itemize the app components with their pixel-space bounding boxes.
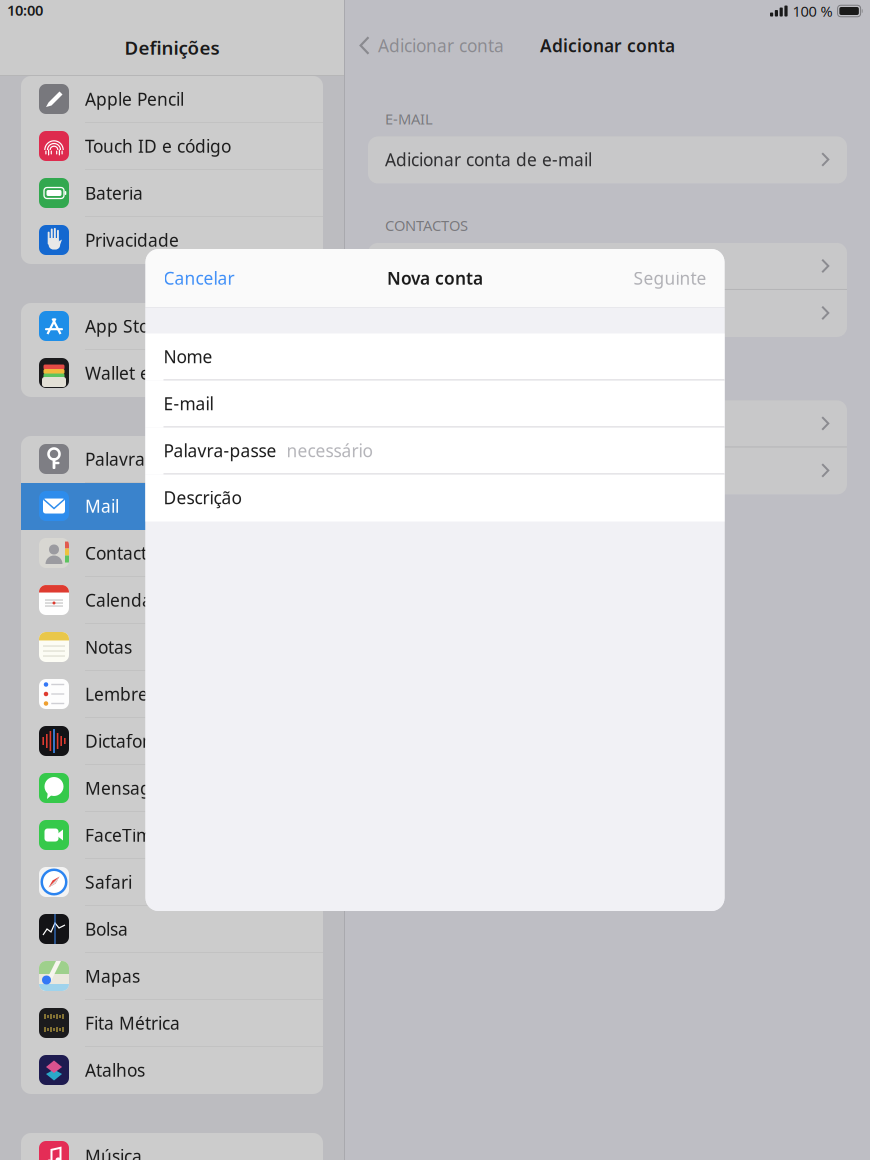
staticText: Música [85, 1144, 142, 1160]
staticText: Mail [85, 494, 119, 517]
button[interactable]: Palavras-passe [21, 436, 323, 483]
staticText: Mensagens [85, 776, 180, 799]
staticText: Adicionar conta [540, 34, 675, 57]
button[interactable]: Nome [145, 333, 724, 380]
staticText: necessário [286, 439, 372, 462]
staticText: Atalhos [85, 1058, 145, 1081]
staticText: Fita Métrica [85, 1011, 180, 1034]
staticText: Contactos [85, 541, 165, 564]
staticText: Descrição [163, 486, 241, 509]
staticText: CONTACTOS [385, 215, 468, 235]
button[interactable]: Notas [21, 624, 323, 671]
button[interactable]: Wallet e Apple Pay [21, 350, 323, 397]
button[interactable] [368, 290, 847, 337]
staticText: Privacidade [85, 228, 179, 251]
button[interactable]: E-mail [145, 380, 724, 427]
staticText: Lembretes [85, 682, 172, 705]
staticText: E-mail [163, 392, 213, 415]
staticText: Nome [163, 345, 212, 368]
staticText: Palavra-passe [163, 439, 276, 462]
button[interactable] [368, 243, 847, 290]
staticText: Nova conta [387, 266, 483, 289]
staticText: Apple Pencil [85, 87, 184, 110]
button[interactable]: Apple Pencil [21, 76, 323, 123]
staticText: 10:00 [7, 0, 43, 20]
staticText: Wallet e Apple Pay [85, 361, 236, 384]
button[interactable]: Contactos [21, 530, 323, 577]
staticText: App Store [85, 314, 166, 337]
button[interactable]: Safari [21, 859, 323, 906]
staticText: Touch ID e código [85, 134, 231, 157]
staticText: FaceTime [85, 823, 162, 846]
staticText: Adicionar conta [378, 34, 504, 57]
button[interactable]: App Store [21, 303, 323, 350]
button[interactable]: Calendário [21, 577, 323, 624]
button[interactable]: Bateria [21, 170, 323, 217]
button[interactable]: Mensagens [21, 765, 323, 812]
button[interactable]: Adicionar conta de e-mail [368, 136, 847, 183]
button[interactable] [368, 447, 847, 494]
button[interactable]: Dictafone [21, 718, 323, 765]
button[interactable]: Atalhos [21, 1047, 323, 1094]
button[interactable]: Fita Métrica [21, 1000, 323, 1047]
button[interactable]: Mail [21, 483, 323, 530]
staticText: CALENDÁRIOS [385, 373, 482, 392]
staticText: Mapas [85, 964, 140, 987]
staticText: Cancelar [163, 266, 234, 289]
button[interactable]: Palavra-passe [145, 427, 724, 474]
staticText: 100 % [793, 1, 833, 21]
staticText: Seguinte [633, 266, 706, 289]
button[interactable]: Música [21, 1133, 323, 1160]
staticText: E-MAIL [385, 109, 433, 128]
staticText: Notas [85, 635, 132, 658]
staticText: Dictafone [85, 729, 163, 752]
button[interactable] [368, 400, 847, 447]
staticText: Bateria [85, 181, 143, 204]
staticText: Calendário [85, 588, 173, 611]
button[interactable]: Adicionar conta [345, 26, 504, 65]
button[interactable]: Privacidade [21, 217, 323, 264]
button[interactable]: Seguinte [621, 254, 724, 301]
button[interactable]: Cancelar [145, 254, 246, 301]
staticText: Safari [85, 870, 132, 893]
staticText: Palavras-passe [85, 447, 206, 470]
button[interactable]: Touch ID e código [21, 123, 323, 170]
staticText: Adicionar conta de e-mail [385, 148, 592, 171]
button[interactable]: Bolsa [21, 906, 323, 953]
staticText: Definições [124, 35, 219, 60]
button[interactable]: Descrição [145, 474, 724, 521]
button[interactable]: Lembretes [21, 671, 323, 718]
button[interactable]: Mapas [21, 953, 323, 1000]
button[interactable]: FaceTime [21, 812, 323, 859]
staticText: Bolsa [85, 917, 128, 940]
